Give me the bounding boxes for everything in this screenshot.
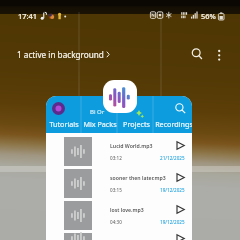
staticText: Projects [123,119,150,129]
button[interactable]: Mix Packs [82,119,118,129]
button[interactable]: Lucid World.mp3 [46,133,192,165]
button[interactable]: Search [185,42,209,66]
staticText: 56% [201,11,216,21]
staticText: 19/12/2025 [160,187,185,193]
staticText: Lucid World.mp3 [110,142,153,149]
button[interactable]: Play [172,201,188,217]
button[interactable]: App icon [103,80,137,113]
button[interactable]: saxo.mp3 [46,229,192,240]
button[interactable]: Search [172,100,188,116]
staticText: Recordings [155,119,192,129]
button[interactable]: sooner then later.mp3 [46,165,192,197]
staticText: 03:12 [110,155,122,161]
button[interactable]: Profile [52,102,65,115]
button[interactable]: Tutorials [46,119,82,129]
staticText: 03:15 [110,187,122,193]
staticText: 19/12/2025 [160,219,185,225]
button[interactable]: More options [208,42,230,64]
button[interactable]: Play [172,169,188,185]
button[interactable]: Projects [118,119,155,129]
staticText: 21/12/2025 [160,155,185,161]
staticText: Tutorials [49,119,79,129]
button[interactable]: Recordings [155,119,192,129]
staticText: Mix Packs [83,119,117,129]
button[interactable]: Play [172,137,188,153]
staticText: lost love.mp3 [110,206,144,213]
staticText: sooner then later.mp3 [110,174,166,181]
button[interactable]: 1 active in background [17,49,110,60]
staticText: 1 active in background [17,49,104,60]
staticText: 17:41 [18,11,37,21]
button[interactable]: lost love.mp3 [46,197,192,229]
staticText: 04:30 [110,219,122,225]
button[interactable]: Play [172,233,188,240]
staticText: Bi Or [90,108,105,116]
